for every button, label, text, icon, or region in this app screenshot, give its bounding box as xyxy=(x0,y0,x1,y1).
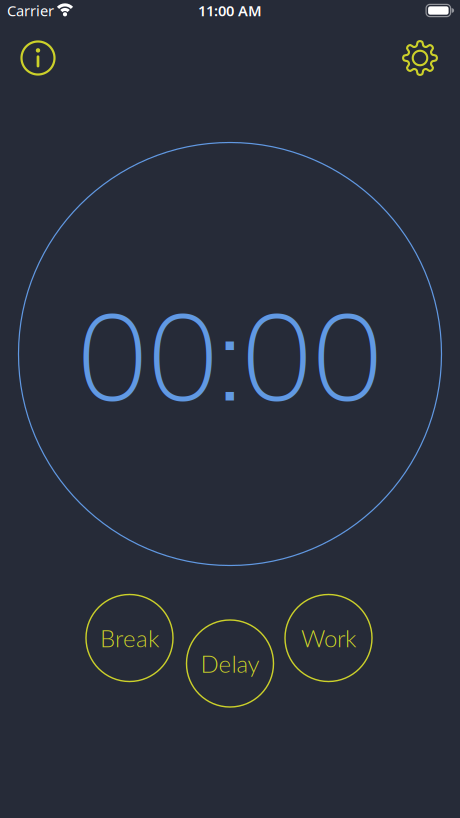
staticText: 11:00 AM xyxy=(198,0,262,20)
staticText: Break xyxy=(100,624,159,652)
button[interactable]: Work xyxy=(285,594,372,681)
staticText: Work xyxy=(301,624,356,652)
staticText: Delay xyxy=(200,649,259,678)
button[interactable]: Settings xyxy=(398,36,442,80)
button[interactable]: Info xyxy=(16,36,60,80)
button[interactable]: Delay xyxy=(186,620,273,707)
staticText: Carrier xyxy=(7,0,54,20)
button[interactable]: Break xyxy=(86,594,173,681)
staticText: 00:00 xyxy=(76,278,384,443)
